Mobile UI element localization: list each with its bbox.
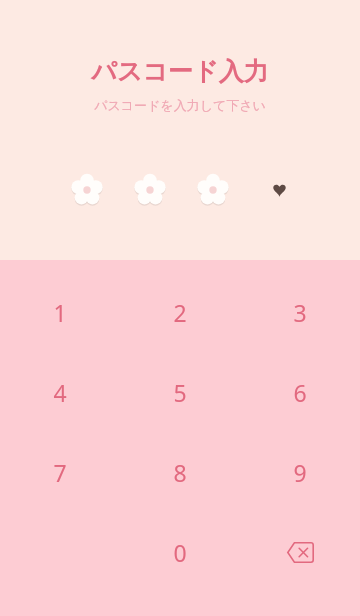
staticText: 6 [293,377,307,408]
staticText: 2 [173,297,187,328]
button[interactable]: 5 [144,356,216,428]
staticText: パスコード入力 [91,56,269,87]
staticText: 8 [173,457,187,488]
staticText: 1 [53,297,67,328]
button[interactable]: 4 [24,356,96,428]
staticText: 5 [173,377,187,408]
staticText: 3 [293,297,307,328]
button[interactable]: 0 [144,516,216,588]
staticText: パスコードを入力して下さい [94,97,266,113]
staticText: 7 [53,457,67,488]
button[interactable]: Delete [264,516,336,588]
button[interactable]: 3 [264,276,336,348]
staticText: 4 [53,377,67,408]
button[interactable]: 6 [264,356,336,428]
button[interactable]: 2 [144,276,216,348]
button[interactable]: 9 [264,436,336,508]
staticText: 0 [173,537,187,568]
button[interactable]: 8 [144,436,216,508]
button[interactable]: 1 [24,276,96,348]
button[interactable]: 7 [24,436,96,508]
staticText: 9 [293,457,307,488]
